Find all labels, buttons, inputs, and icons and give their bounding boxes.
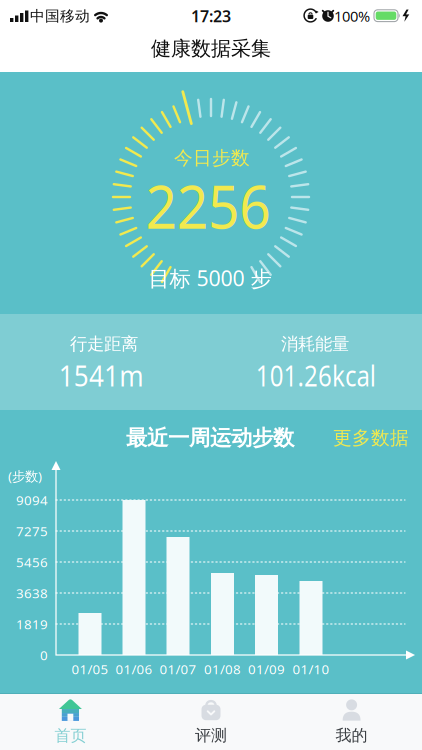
staticText: 首页 (54, 726, 86, 746)
staticText: 01/10 (292, 660, 329, 678)
staticText: 1541m (53, 355, 148, 394)
staticText: 健康数据采集 (151, 36, 271, 61)
staticText: 100% (334, 6, 370, 26)
staticText: 2256 (140, 166, 276, 245)
button[interactable]: 我的 (281, 694, 422, 750)
staticText: 0 (40, 646, 48, 664)
button[interactable]: 更多数据 (333, 426, 409, 449)
staticText: 今日步数 (174, 146, 250, 169)
button[interactable]: 评测 (141, 694, 281, 750)
staticText: 最近一周运动步数 (126, 425, 294, 451)
staticText: 01/05 (71, 660, 108, 678)
staticText: 目标 5000 步 (148, 264, 271, 292)
staticText: 01/08 (204, 660, 241, 678)
staticText: 评测 (195, 726, 227, 745)
staticText: 7275 (16, 522, 48, 540)
staticText: 我的 (336, 726, 368, 745)
staticText: 01/09 (248, 660, 285, 678)
staticText: 9094 (16, 491, 48, 509)
staticText: 行走距离 (70, 333, 138, 355)
staticText: 5456 (16, 553, 48, 571)
staticText: 消耗能量 (281, 333, 349, 355)
staticText: 3638 (16, 584, 48, 602)
button[interactable]: 首页 (0, 694, 141, 750)
staticText: 01/07 (159, 660, 196, 678)
staticText: 中国移动 (30, 7, 90, 25)
staticText: 更多数据 (333, 426, 409, 449)
staticText: 1819 (16, 615, 48, 633)
staticText: 01/06 (115, 660, 152, 678)
staticText: 17:23 (191, 5, 231, 27)
staticText: (步数) (8, 467, 42, 485)
staticText: 101.26kcal (242, 355, 389, 394)
